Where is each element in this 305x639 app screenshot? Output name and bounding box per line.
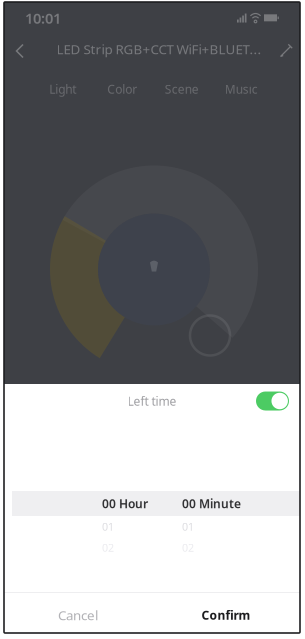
staticText: Music [225, 81, 258, 97]
button[interactable]: Light [33, 77, 92, 101]
staticText: 00 Minute [182, 495, 241, 511]
staticText: 02 [182, 540, 194, 555]
staticText: 01 [102, 519, 114, 534]
button[interactable]: Scene [152, 77, 211, 101]
button[interactable]: Color [92, 77, 152, 101]
staticText: 01 [182, 519, 194, 534]
staticText: 02 [102, 540, 114, 555]
button[interactable]: Rename device [273, 38, 299, 64]
staticText: Color [107, 81, 137, 97]
staticText: LED Strip RGB+CCT WiFi+BLUET... [56, 40, 261, 58]
button[interactable]: Left time on [256, 391, 289, 410]
staticText: Left time [127, 393, 176, 409]
staticText: Cancel [58, 606, 98, 624]
staticText: Scene [165, 81, 199, 97]
button[interactable]: Back [5, 38, 35, 64]
staticText: 00 Hour [102, 495, 148, 511]
button[interactable]: Music [211, 77, 271, 101]
staticText: 10:01 [25, 8, 61, 28]
staticText: Light [49, 81, 76, 97]
button[interactable]: Cancel [4, 593, 152, 633]
staticText: Confirm [201, 607, 250, 623]
button[interactable]: Confirm [152, 593, 300, 633]
